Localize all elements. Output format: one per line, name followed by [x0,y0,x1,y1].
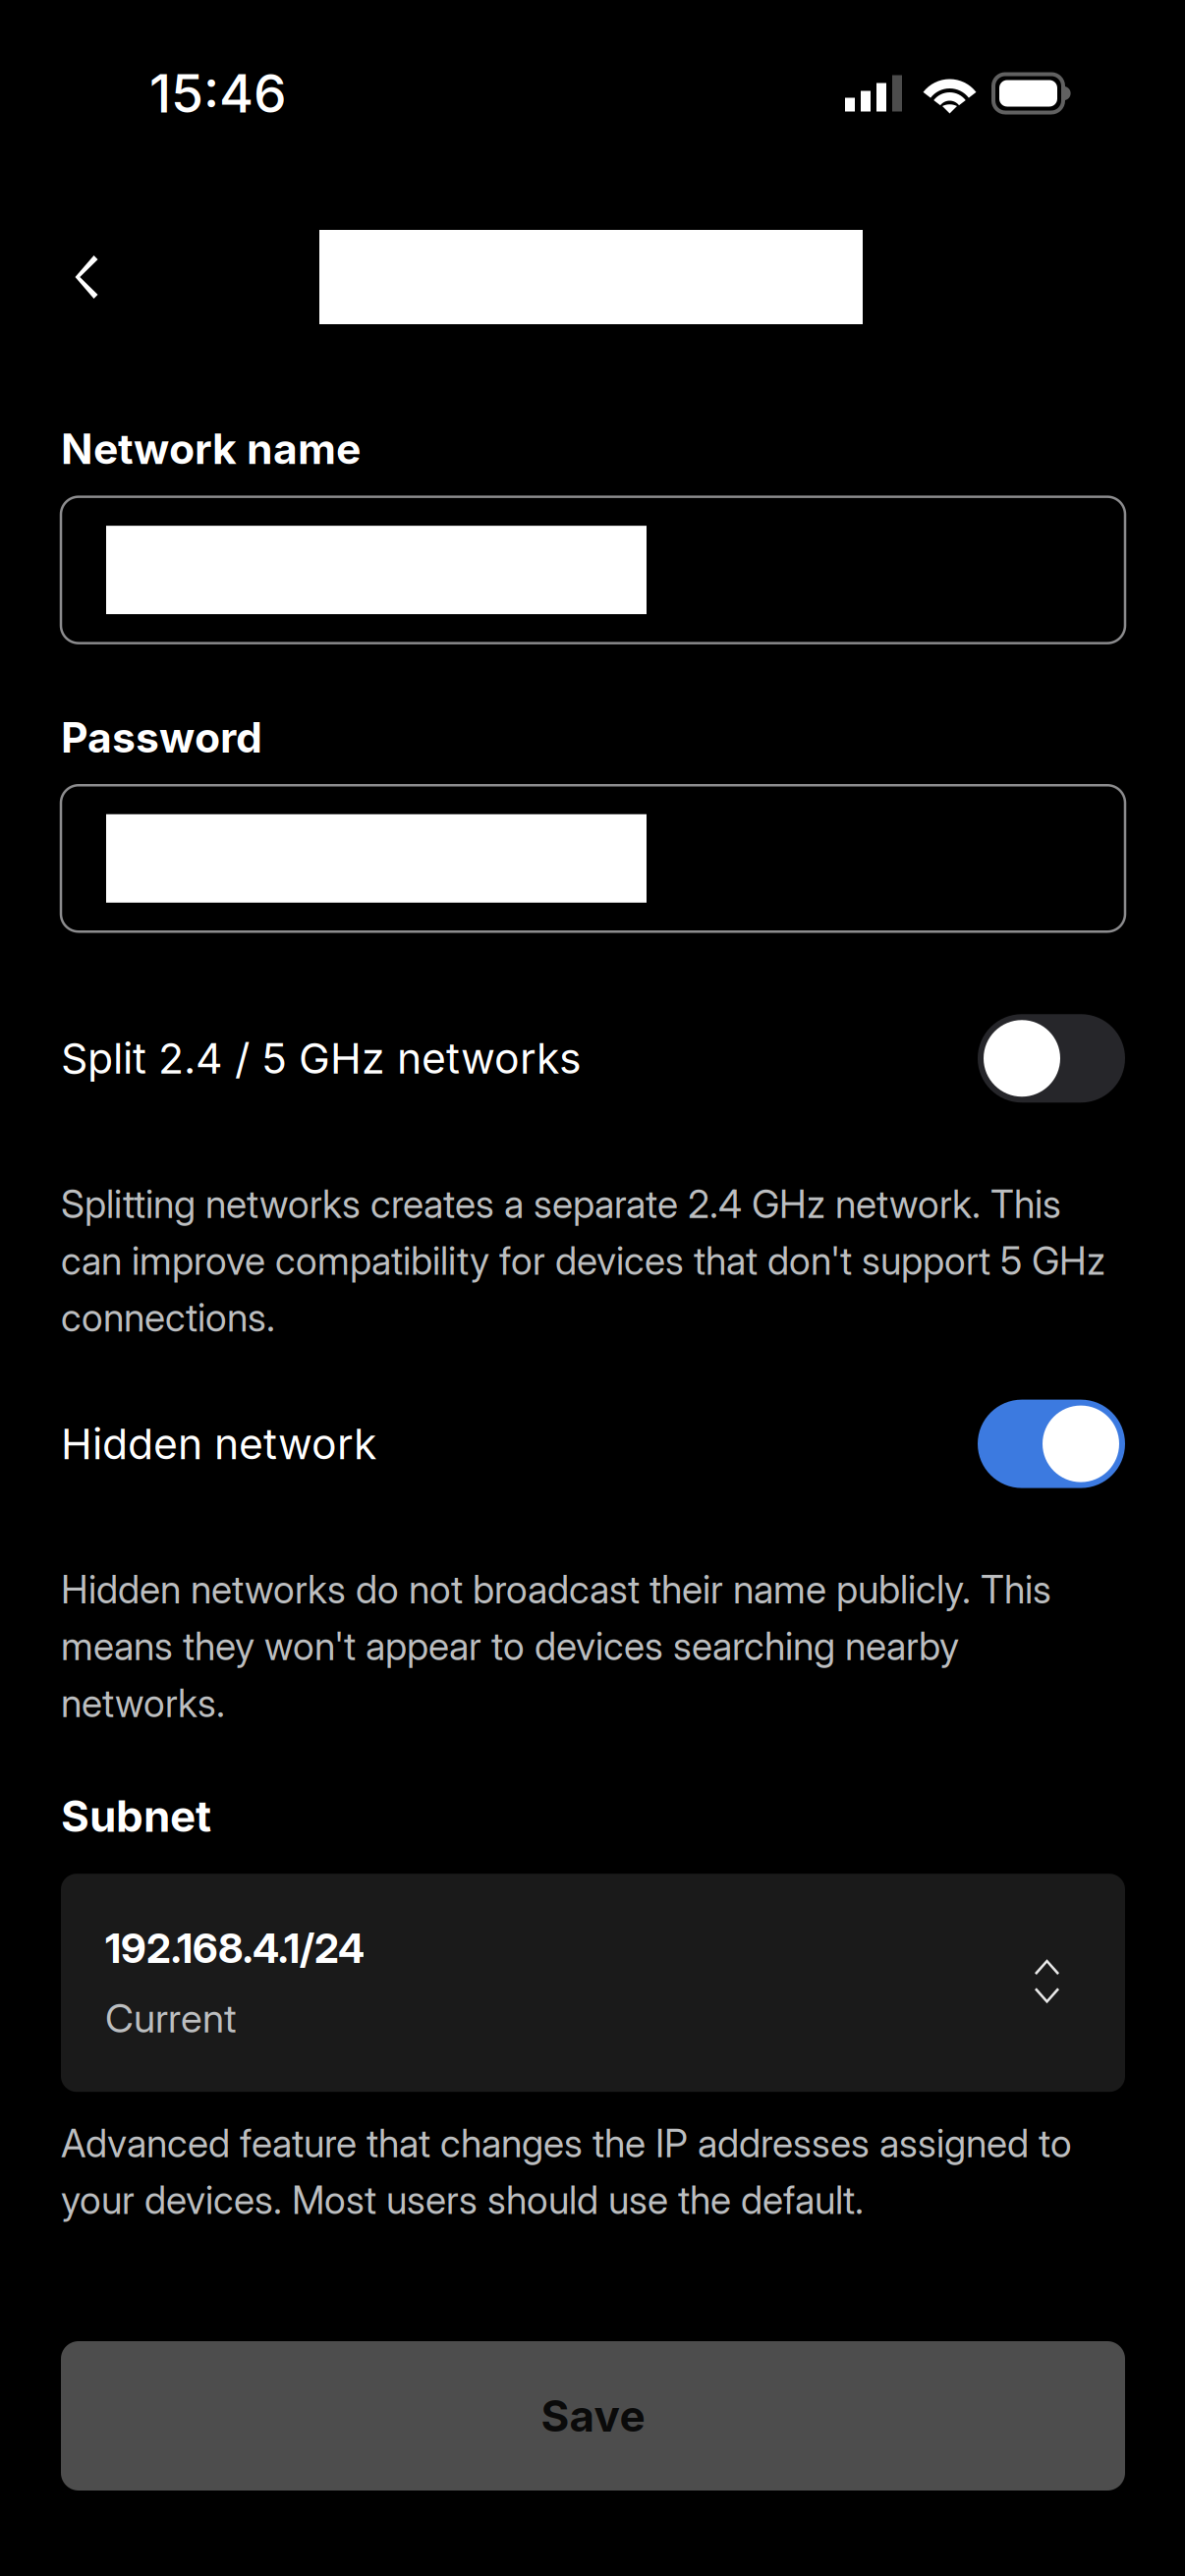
staticText: Save [541,2390,645,2442]
button[interactable]: Back [33,226,140,328]
staticText: Password [61,712,262,763]
staticText: Split 2.4 / 5 GHz networks [61,1033,582,1084]
staticText: 15:46 [149,62,287,125]
staticText: Splitting networks creates a separate 2.… [61,1181,1105,1341]
button[interactable]: Password [61,785,1125,932]
button[interactable]: Network name [61,497,1125,643]
staticText: Advanced feature that changes the IP add… [61,2120,1072,2223]
button[interactable]: Save [61,2341,1125,2491]
button[interactable]: Hidden network [61,1400,1125,1488]
button[interactable]: Split 2.4 / 5 GHz networks [61,1014,1125,1103]
button[interactable]: 192.168.4.1/24 [61,1874,1125,2092]
staticText: Subnet [61,1790,211,1842]
button[interactable]: Network [319,230,863,324]
staticText: Current [105,1994,237,2042]
staticText: Hidden network [61,1418,376,1469]
staticText: Hidden networks do not broadcast their n… [61,1567,1051,1726]
staticText: Network name [61,423,361,474]
staticText: 192.168.4.1/24 [105,1924,365,1973]
